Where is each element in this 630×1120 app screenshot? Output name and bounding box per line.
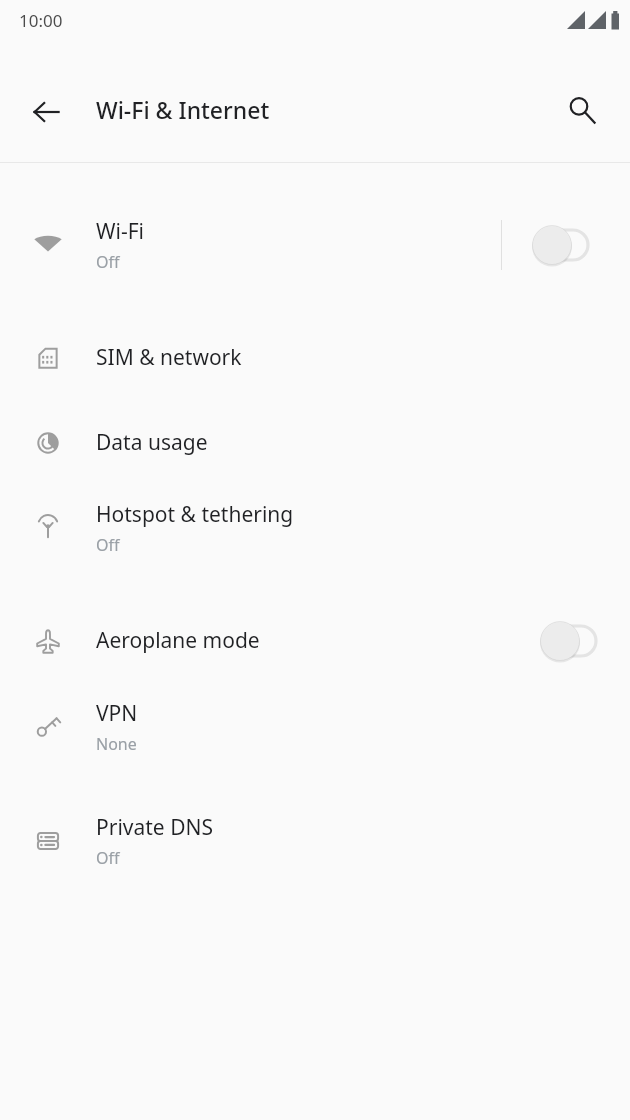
staticText: Off — [96, 847, 120, 869]
staticText: Data usage — [96, 428, 208, 457]
staticText: Wi-Fi — [96, 217, 145, 246]
staticText: VPN — [96, 699, 138, 728]
button[interactable]: Hotspot & tethering — [0, 486, 630, 570]
button[interactable]: Wi-Fi toggle — [532, 221, 604, 269]
button[interactable]: SIM & network — [0, 315, 630, 400]
staticText: Off — [96, 534, 120, 556]
button[interactable]: Private DNS — [0, 799, 630, 883]
staticText: 10:00 — [19, 9, 63, 32]
staticText: Hotspot & tethering — [96, 500, 294, 529]
button[interactable]: Back — [18, 84, 74, 140]
staticText: Off — [96, 251, 120, 273]
staticText: Private DNS — [96, 813, 213, 842]
staticText: SIM & network — [96, 343, 242, 372]
button[interactable]: Wi-Fi — [0, 203, 630, 287]
staticText: None — [96, 733, 137, 755]
button[interactable]: Data usage — [0, 400, 630, 485]
button[interactable]: Search — [554, 82, 610, 138]
button[interactable]: Aeroplane mode — [0, 598, 630, 683]
staticText: Aeroplane mode — [96, 626, 260, 655]
staticText: Wi-Fi & Internet — [96, 94, 270, 125]
button[interactable]: Aeroplane mode toggle — [540, 617, 612, 665]
button[interactable]: VPN — [0, 685, 630, 769]
